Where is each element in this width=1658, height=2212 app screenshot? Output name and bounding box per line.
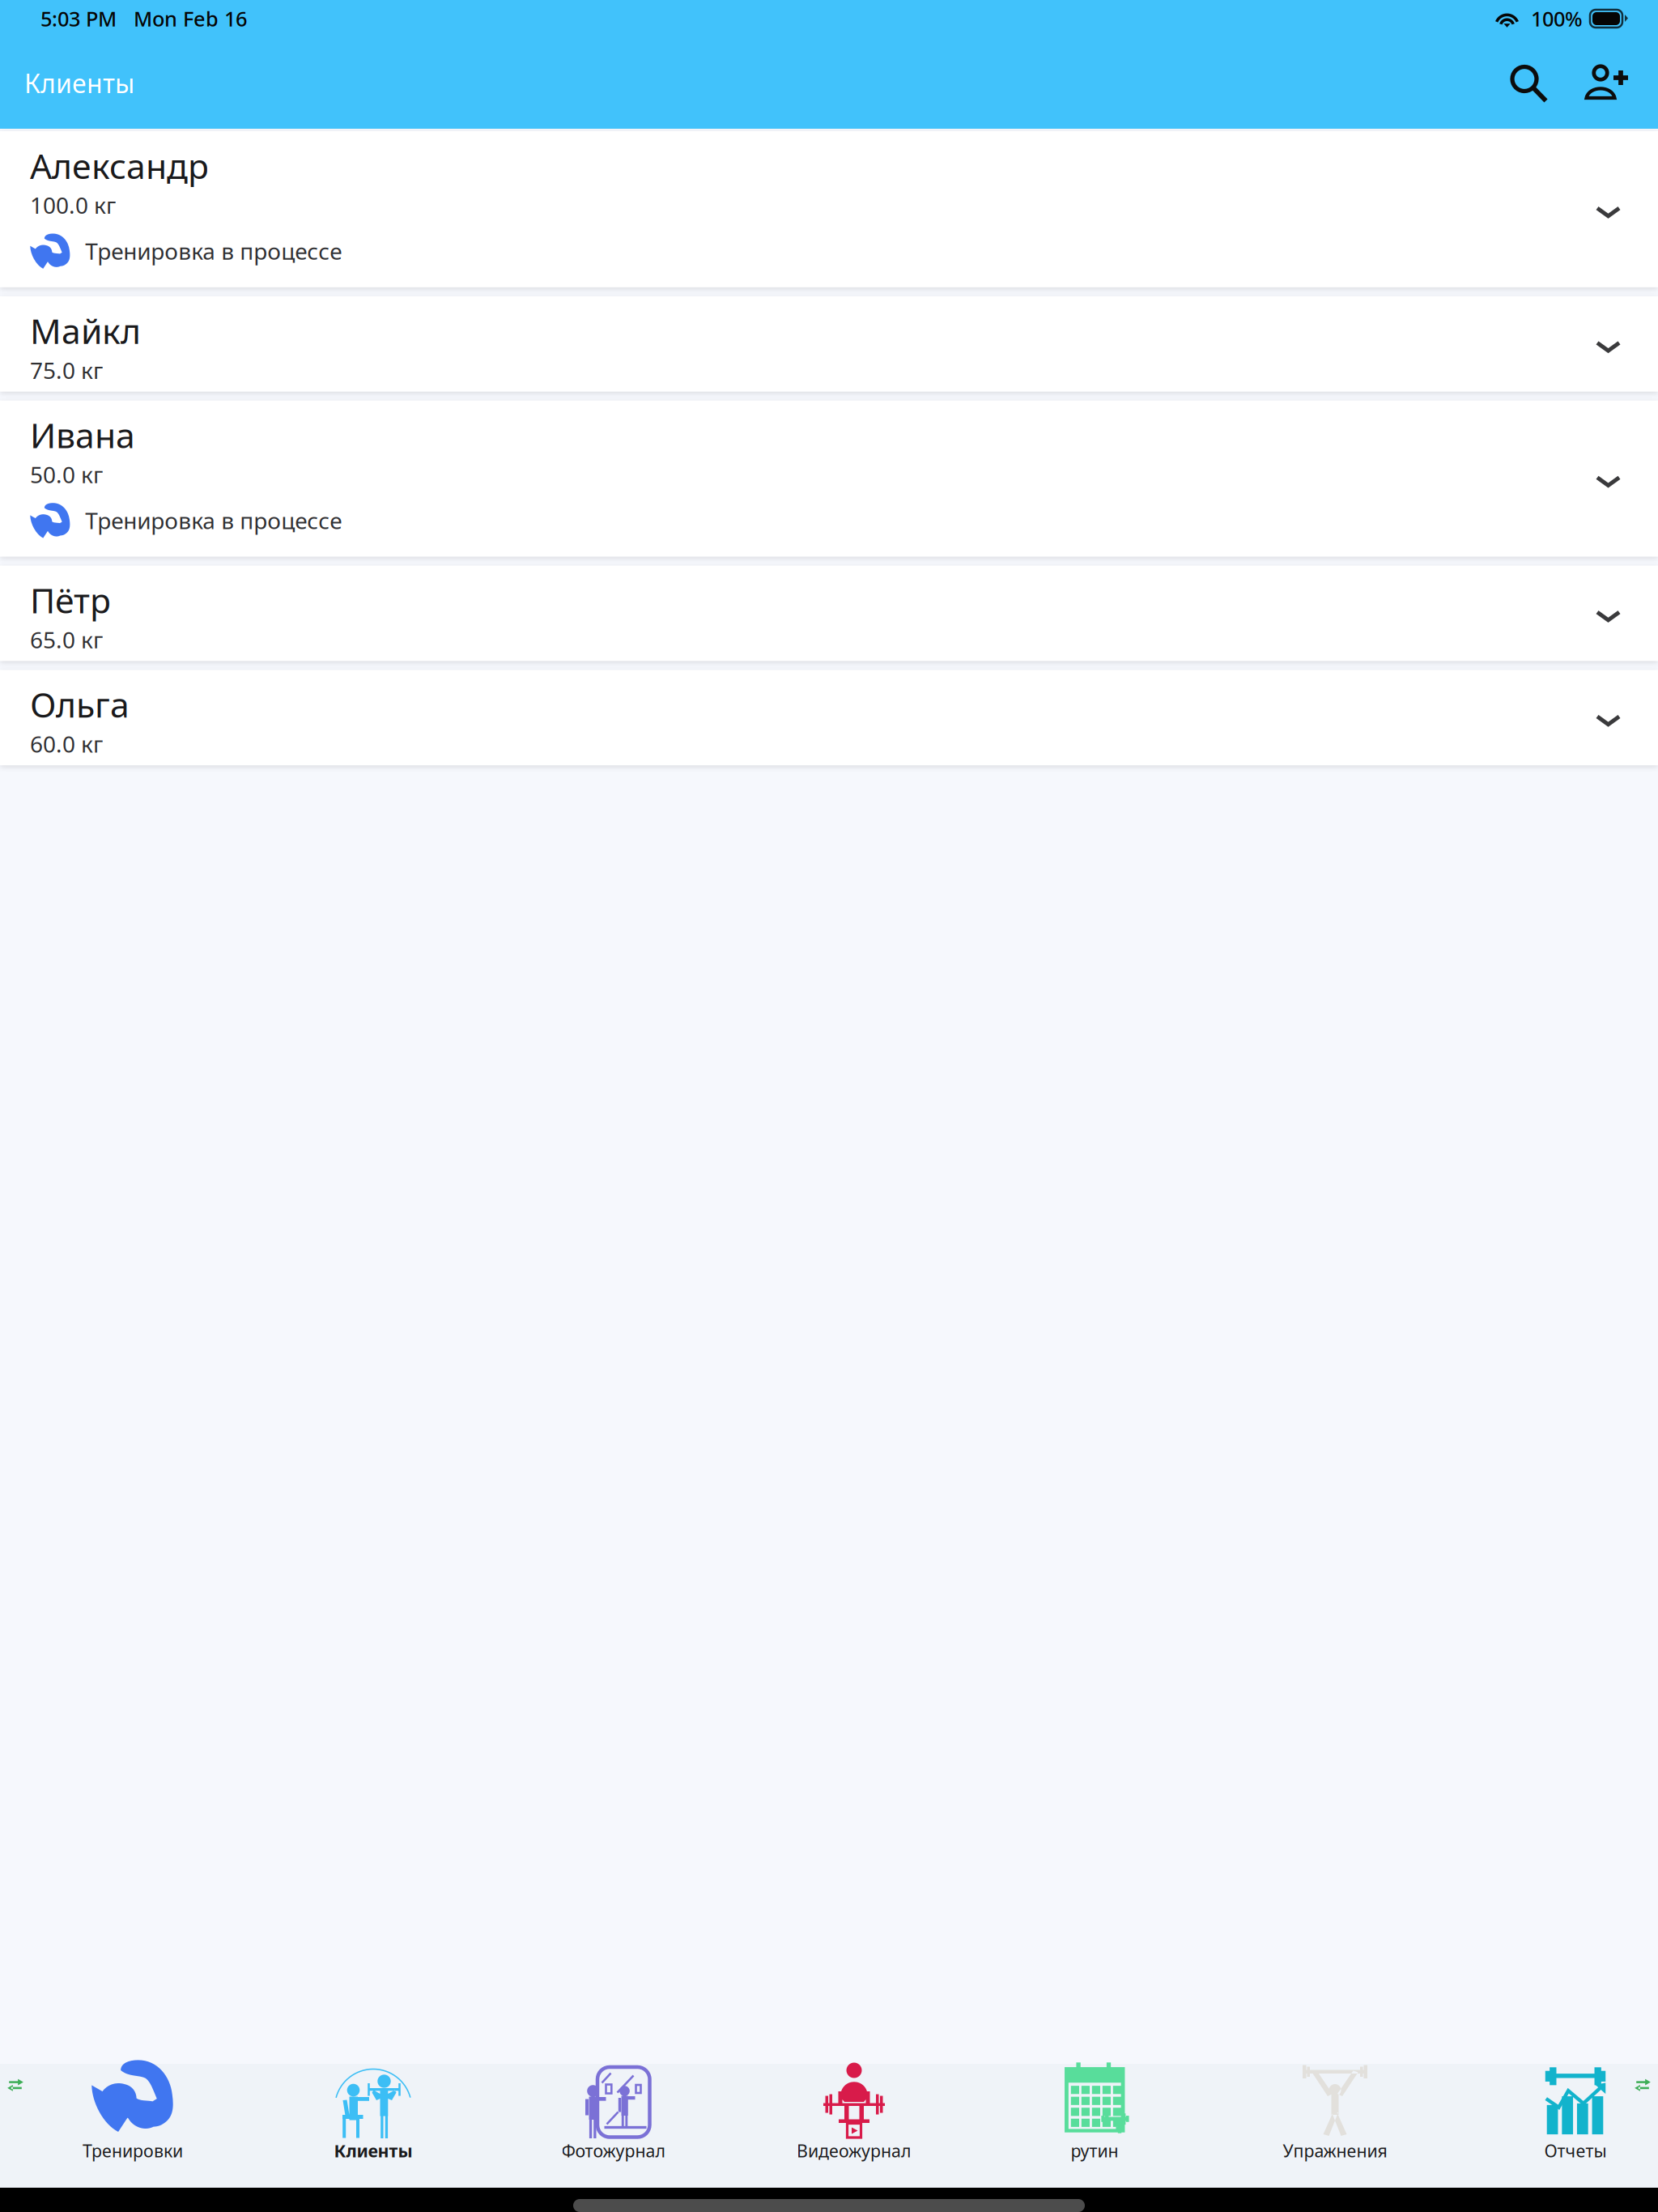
button[interactable]: Тренировки	[13, 2064, 253, 2188]
staticText: Упражнения	[1283, 2139, 1387, 2162]
staticText: Тренировка в процессе	[85, 505, 342, 535]
staticText: Mon Feb 16	[117, 5, 247, 32]
staticText: 50.0 кг	[30, 459, 103, 489]
staticText: 75.0 кг	[30, 355, 103, 385]
button[interactable]: рутин	[974, 2064, 1215, 2188]
staticText: Видеожурнал	[797, 2139, 912, 2162]
staticText: 5:03 PM	[40, 5, 117, 32]
button[interactable]: Ивана	[0, 401, 1658, 557]
staticText: Тренировка в процессе	[85, 236, 342, 266]
button[interactable]: Добавить клиента	[1567, 43, 1645, 123]
button[interactable]: Пётр	[0, 566, 1658, 661]
staticText: Пётр	[30, 577, 111, 623]
button[interactable]: Поиск	[1490, 43, 1567, 123]
staticText: Ивана	[30, 412, 135, 458]
staticText: Александр	[30, 143, 209, 188]
staticText: Фотожурнал	[561, 2139, 666, 2162]
staticText: 100.0 кг	[30, 190, 116, 220]
button[interactable]: Предыдущие вкладки	[5, 2075, 26, 2096]
staticText: 100%	[1520, 5, 1583, 32]
staticText: Тренировки	[83, 2139, 183, 2162]
staticText: 60.0 кг	[30, 729, 103, 759]
staticText: Клиенты	[334, 2139, 412, 2162]
button[interactable]: Ольга	[0, 670, 1658, 765]
staticText: Майкл	[30, 308, 141, 353]
button[interactable]: Фотожурнал	[493, 2064, 734, 2188]
button[interactable]: Упражнения	[1215, 2064, 1455, 2188]
staticText: рутин	[1071, 2139, 1118, 2162]
button[interactable]: Клиенты	[253, 2064, 493, 2188]
button[interactable]: Майкл	[0, 296, 1658, 392]
button[interactable]: Александр	[0, 131, 1658, 287]
staticText: Отчеты	[1544, 2139, 1607, 2162]
button[interactable]: Отчеты	[1455, 2064, 1658, 2188]
staticText: Клиенты	[24, 66, 134, 100]
staticText: Ольга	[30, 681, 130, 727]
staticText: 65.0 кг	[30, 624, 103, 655]
button[interactable]: Следующие вкладки	[1632, 2075, 1653, 2096]
button[interactable]: Видеожурнал	[734, 2064, 974, 2188]
